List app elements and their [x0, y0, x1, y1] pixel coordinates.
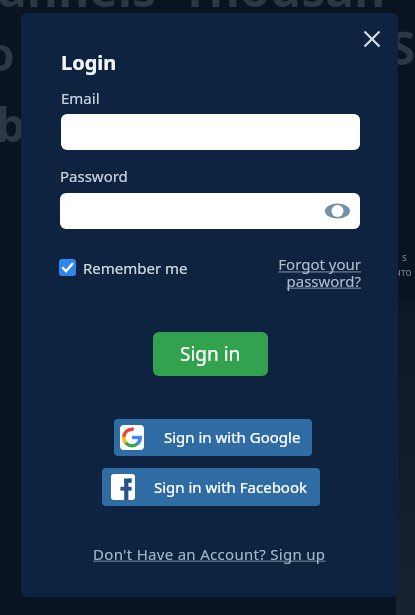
staticText: Login: [61, 49, 117, 76]
button[interactable]: Remember me: [59, 259, 199, 277]
staticText: что: [395, 265, 412, 279]
button[interactable]: [359, 26, 385, 52]
button[interactable]: Don't Have an Account? Sign up: [93, 544, 326, 564]
button[interactable]: [60, 193, 360, 229]
button[interactable]: Forgot your password?: [233, 254, 361, 291]
staticText: Password: [60, 166, 128, 186]
staticText: b: [0, 93, 26, 156]
staticText: Sa: [390, 16, 415, 79]
button[interactable]: Sign in: [153, 332, 268, 376]
staticText: s: [402, 250, 407, 264]
button[interactable]: Sign in with Facebook: [102, 468, 320, 506]
button[interactable]: Sign in with Google: [114, 419, 312, 456]
button[interactable]: [61, 114, 360, 150]
staticText: Sign in with Facebook: [154, 477, 308, 497]
staticText: Sign in: [180, 341, 241, 367]
staticText: Sign in with Google: [164, 427, 301, 447]
staticText: Email: [61, 88, 100, 108]
staticText: Remember me: [83, 258, 188, 276]
staticText: annels Thousan: [0, 0, 386, 21]
staticText: o: [0, 22, 15, 85]
